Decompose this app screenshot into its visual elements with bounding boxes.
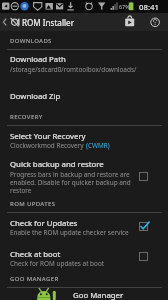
staticText: 08:41 <box>139 2 159 13</box>
button[interactable]: Play Store <box>120 15 139 29</box>
button[interactable]: Unchecked <box>139 252 148 261</box>
button[interactable]: Unchecked <box>139 172 148 181</box>
staticText: RECOVERY <box>10 113 43 121</box>
staticText: 67% <box>119 3 130 10</box>
button[interactable]: Check for Updates <box>10 218 78 229</box>
staticText: GOO MANAGER <box>10 275 59 283</box>
staticText: Goo Manager <box>73 290 124 300</box>
button[interactable]: Download Zip <box>10 91 61 102</box>
button[interactable]: Download Path <box>10 54 66 65</box>
staticText: ROM UPDATES <box>10 200 56 208</box>
button[interactable]: ROM Installer <box>22 17 74 28</box>
staticText: (CWMR) <box>86 141 110 150</box>
button[interactable]: Navigate up <box>0 13 21 31</box>
button[interactable]: Goo Manager <box>0 288 168 300</box>
staticText: Enable the ROM update checker service <box>10 228 129 237</box>
staticText: /storage/sdcard0/romtoolbox/downloads/ <box>10 65 137 74</box>
button[interactable]: Check at boot <box>10 249 61 260</box>
staticText: enabled. Disable for quicker backup and <box>10 178 131 187</box>
button[interactable]: Quick backup and restore <box>10 159 104 170</box>
staticText: Clockworkmod Recovery <box>10 141 86 150</box>
button[interactable]: Help <box>146 15 164 29</box>
button[interactable]: Select Your Recovery <box>10 131 86 142</box>
staticText: restore <box>10 186 32 195</box>
button[interactable]: Checked <box>139 222 148 231</box>
staticText: DOWNLOADS <box>10 37 52 45</box>
staticText: Progress bars in backup and restore are <box>10 170 130 179</box>
staticText: Check for ROM updates at boot <box>10 259 105 268</box>
